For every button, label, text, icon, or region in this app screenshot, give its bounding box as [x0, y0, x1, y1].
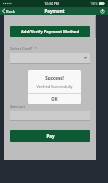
staticText: OK	[51, 96, 58, 102]
staticText: *	[33, 46, 37, 51]
staticText: Select Card*	[10, 46, 33, 51]
staticText: Back	[6, 9, 15, 14]
staticText: Add/Verify Payment Method	[21, 29, 79, 35]
staticText: Pay	[46, 133, 55, 139]
staticText: 100%	[90, 2, 98, 6]
button[interactable]: Back	[0, 7, 17, 15]
staticText: Success!	[45, 75, 64, 81]
button[interactable]: Add/Verify Payment Method	[10, 26, 90, 37]
button[interactable]	[10, 53, 90, 63]
button[interactable]: Pay	[10, 130, 90, 142]
staticText: 12:34 PM	[44, 1, 59, 6]
staticText: Verified Successfully	[36, 84, 73, 89]
button[interactable]: OK	[28, 94, 81, 104]
staticText: Payment	[44, 8, 65, 14]
button[interactable]: Power	[97, 7, 108, 15]
staticText: Amount	[10, 104, 25, 109]
